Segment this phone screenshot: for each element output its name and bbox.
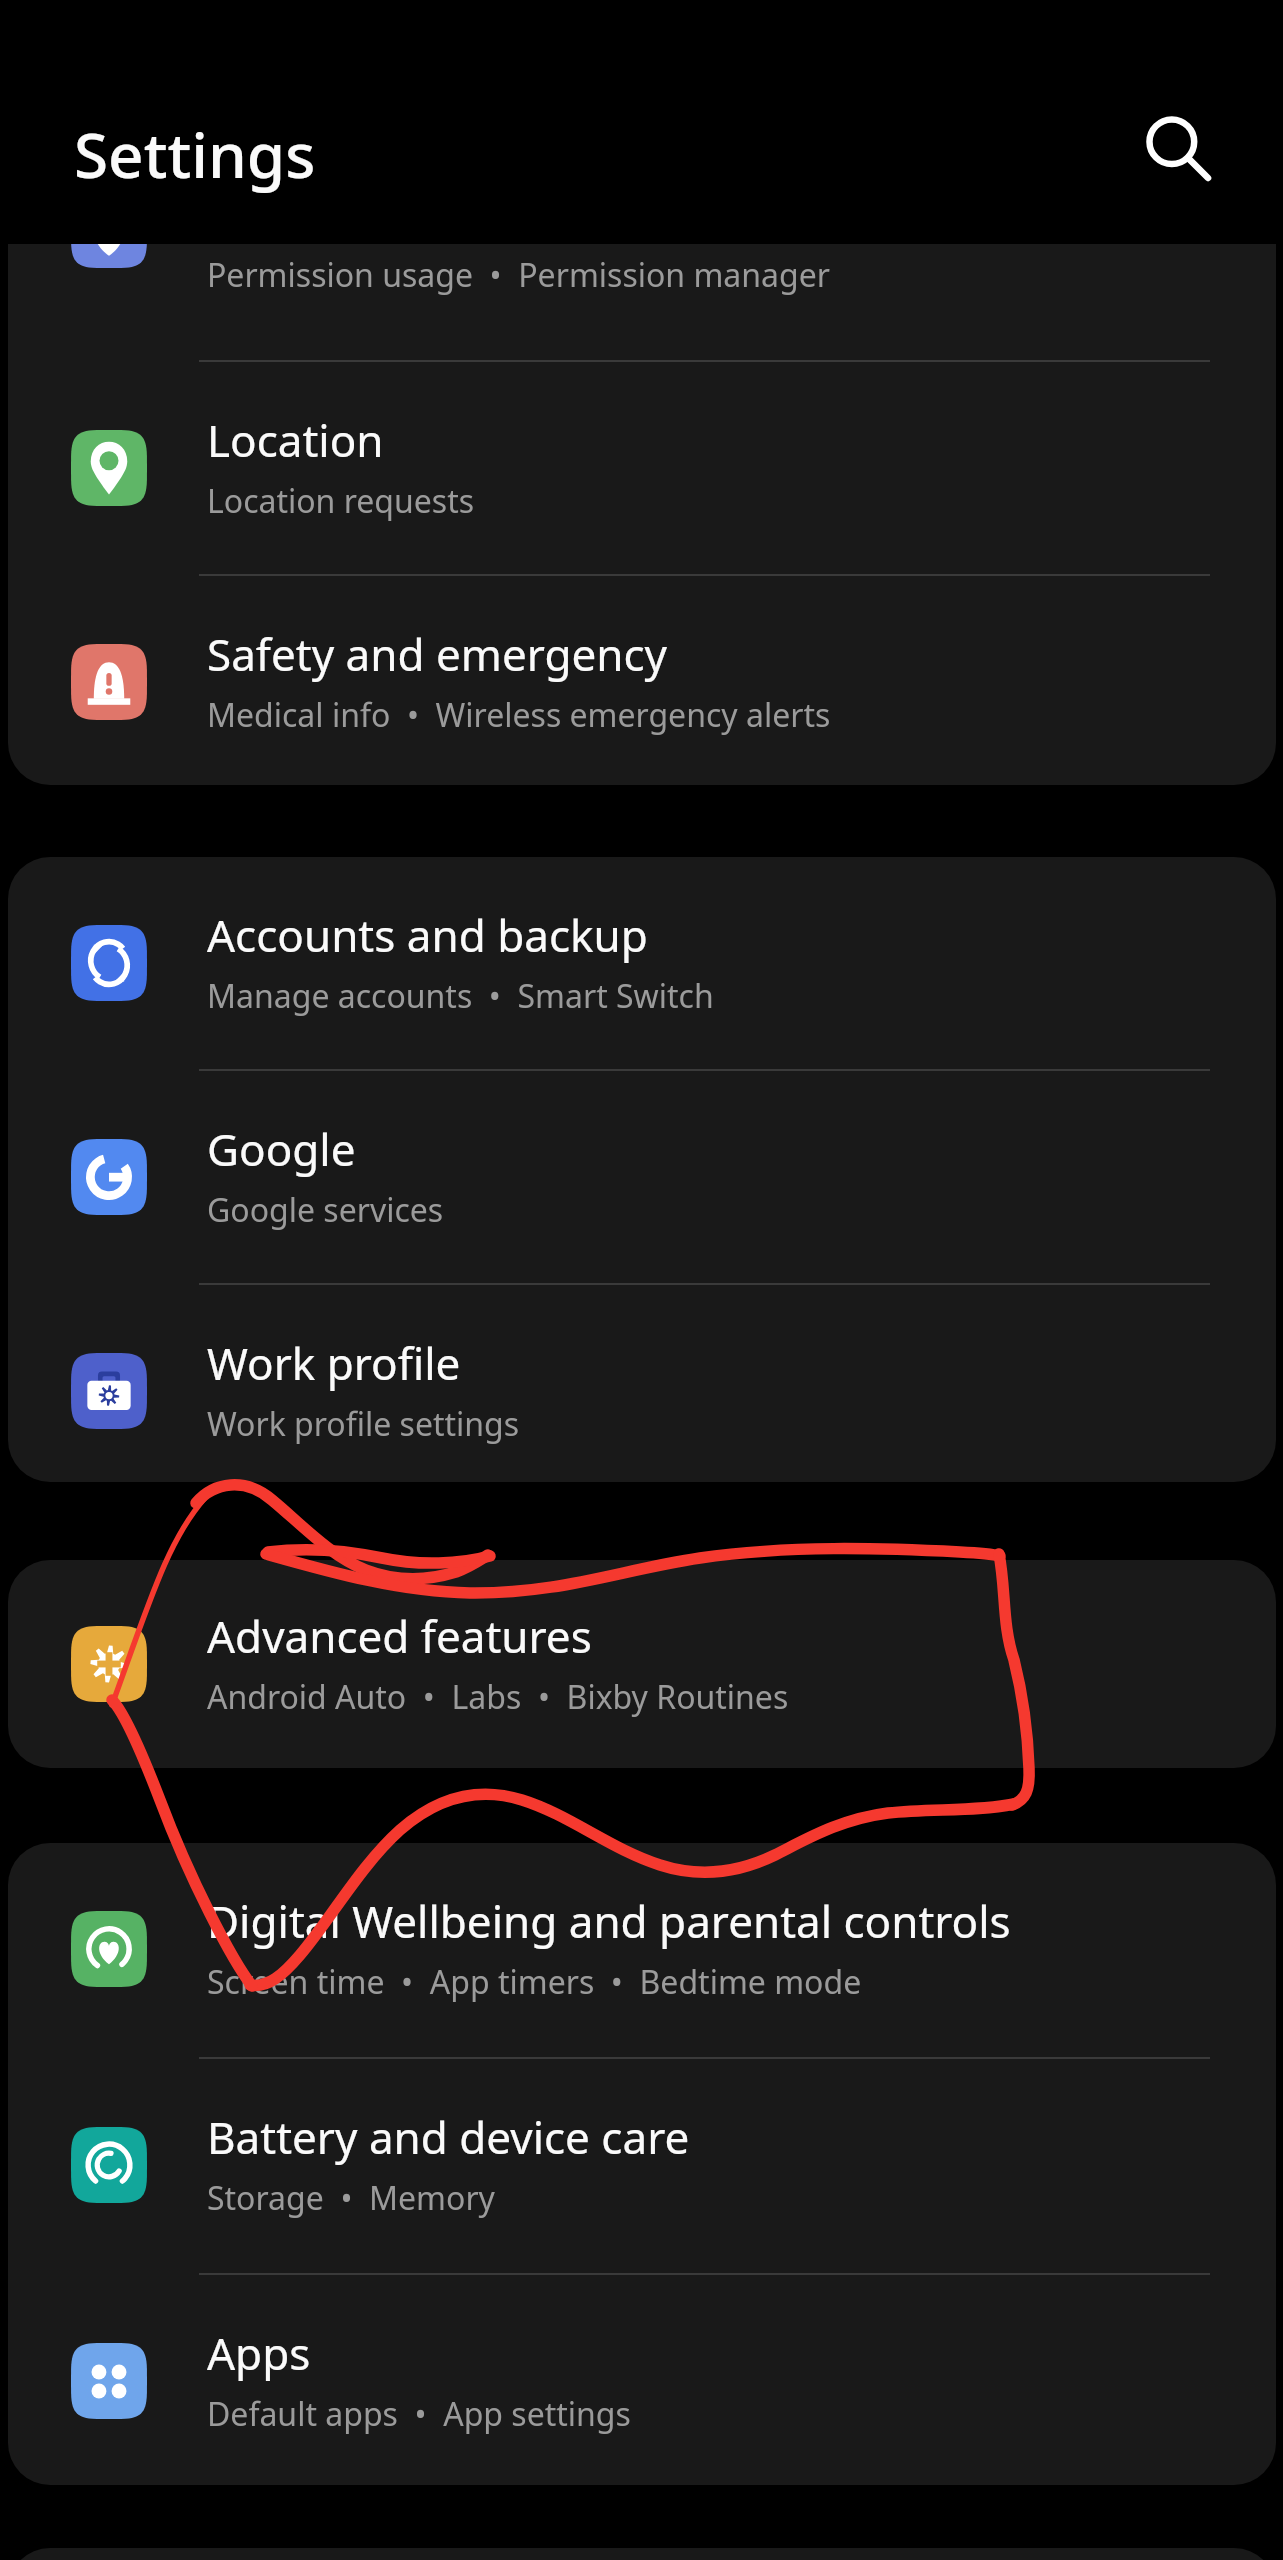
button[interactable]: Search <box>1124 96 1228 200</box>
staticText: Battery and device care <box>207 2107 690 2167</box>
staticText: Google services <box>207 1188 444 1232</box>
staticText: Location requests <box>207 479 475 523</box>
staticText: Work profile settings <box>207 1402 520 1446</box>
button[interactable]: Google <box>8 1071 1276 1283</box>
staticText: Google <box>207 1119 356 1179</box>
button[interactable]: Battery and device care <box>8 2059 1276 2273</box>
staticText: Apps <box>207 2323 311 2383</box>
button[interactable]: Safety and emergency <box>8 576 1276 785</box>
staticText: Default apps • App settings <box>207 2392 631 2436</box>
button[interactable]: Apps <box>8 2275 1276 2485</box>
staticText: Android Auto • Labs • Bixby Routines <box>207 1675 789 1719</box>
staticText: Medical info • Wireless emergency alerts <box>207 693 831 737</box>
staticText: Safety and emergency <box>207 624 668 684</box>
staticText: Screen time • App timers • Bedtime mode <box>207 1960 862 2004</box>
button[interactable]: Accounts and backup <box>8 857 1276 1069</box>
button[interactable]: Advanced features <box>8 1560 1276 1768</box>
button[interactable]: Privacy <box>8 244 1276 360</box>
staticText: Storage • Memory <box>207 2176 495 2220</box>
button[interactable]: Digital Wellbeing and parental controls <box>8 1843 1276 2057</box>
staticText: Work profile <box>207 1333 461 1393</box>
staticText: Permission usage • Permission manager <box>207 253 830 297</box>
staticText: Accounts and backup <box>207 905 648 965</box>
staticText: Advanced features <box>207 1606 592 1666</box>
staticText: Manage accounts • Smart Switch <box>207 974 714 1018</box>
staticText: Settings <box>74 112 316 196</box>
button[interactable]: Location <box>8 362 1276 574</box>
staticText: Digital Wellbeing and parental controls <box>207 1891 1011 1951</box>
button[interactable]: Work profile <box>8 1285 1276 1482</box>
staticText: Location <box>207 410 384 470</box>
